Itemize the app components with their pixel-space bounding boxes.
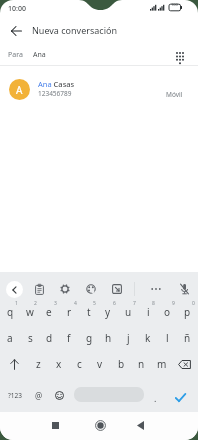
- staticText: w: [26, 305, 34, 319]
- staticText: s: [28, 331, 33, 345]
- staticText: j: [127, 331, 130, 345]
- button[interactable]: [51, 387, 67, 403]
- button[interactable]: i: [118, 302, 178, 322]
- staticText: g: [86, 331, 93, 345]
- button[interactable]: @: [9, 385, 69, 405]
- staticText: 0: [192, 300, 195, 307]
- staticText: 10:00: [8, 4, 26, 14]
- staticText: c: [77, 357, 82, 371]
- staticText: h: [105, 331, 112, 345]
- staticText: f: [67, 331, 71, 345]
- staticText: 123456789: [38, 89, 72, 98]
- button[interactable]: p: [157, 302, 198, 322]
- button[interactable]: [176, 281, 192, 297]
- staticText: .: [154, 392, 157, 404]
- staticText: Móvil: [166, 90, 183, 99]
- staticText: @: [35, 390, 43, 401]
- staticText: Nueva conversación: [32, 24, 117, 36]
- button[interactable]: u: [98, 302, 158, 322]
- staticText: i: [147, 305, 150, 319]
- button[interactable]: e: [19, 302, 79, 322]
- staticText: A: [16, 83, 23, 97]
- staticText: 6: [113, 300, 116, 307]
- button[interactable]: z: [8, 354, 68, 374]
- button[interactable]: b: [91, 354, 151, 374]
- button[interactable]: [5, 355, 23, 373]
- button[interactable]: l: [137, 328, 197, 348]
- button[interactable]: A: [0, 68, 198, 109]
- staticText: u: [125, 305, 132, 319]
- staticText: ?123: [8, 391, 22, 400]
- button[interactable]: x: [29, 354, 89, 374]
- button[interactable]: q: [0, 302, 40, 322]
- staticText: 3: [54, 300, 57, 307]
- staticText: q: [7, 305, 14, 319]
- staticText: p: [184, 305, 191, 319]
- button[interactable]: [170, 48, 190, 68]
- button[interactable]: [57, 281, 73, 297]
- button[interactable]: [45, 415, 65, 435]
- staticText: 2: [34, 300, 37, 307]
- staticText: k: [145, 331, 151, 345]
- staticText: o: [164, 305, 171, 319]
- staticText: d: [46, 331, 53, 345]
- staticText: l: [166, 331, 169, 345]
- staticText: r: [67, 305, 72, 319]
- button[interactable]: ñ: [157, 328, 198, 348]
- button[interactable]: o: [137, 302, 197, 322]
- staticText: 100: [171, 2, 178, 7]
- staticText: Ana: [33, 50, 46, 60]
- button[interactable]: [130, 415, 150, 435]
- staticText: v: [97, 357, 103, 371]
- button[interactable]: g: [59, 328, 119, 348]
- staticText: z: [36, 357, 41, 371]
- staticText: y: [105, 305, 111, 319]
- staticText: 7: [133, 300, 136, 307]
- staticText: t: [87, 305, 91, 319]
- button[interactable]: v: [70, 354, 130, 374]
- button[interactable]: [90, 415, 110, 435]
- button[interactable]: h: [78, 328, 138, 348]
- staticText: e: [46, 305, 52, 319]
- staticText: Para: [8, 50, 23, 60]
- button[interactable]: t: [59, 302, 119, 322]
- staticText: x: [56, 357, 62, 371]
- button[interactable]: [148, 281, 164, 297]
- staticText: b: [118, 357, 125, 371]
- button[interactable]: .: [125, 388, 185, 408]
- staticText: m: [157, 357, 167, 371]
- button[interactable]: n: [111, 354, 171, 374]
- staticText: 1: [15, 300, 18, 307]
- staticText: ñ: [184, 331, 191, 345]
- button[interactable]: [6, 21, 26, 41]
- button[interactable]: y: [78, 302, 138, 322]
- button[interactable]: k: [118, 328, 178, 348]
- button[interactable]: m: [132, 354, 192, 374]
- button[interactable]: [171, 388, 190, 407]
- staticText: a: [7, 331, 13, 345]
- button[interactable]: ?123: [0, 385, 45, 405]
- staticText: 8: [152, 300, 155, 307]
- button[interactable]: [31, 281, 47, 297]
- button[interactable]: [83, 281, 99, 297]
- button[interactable]: s: [0, 328, 60, 348]
- button[interactable]: a: [0, 328, 40, 348]
- button[interactable]: [109, 281, 125, 297]
- staticText: Ana Casas: [38, 79, 75, 89]
- staticText: 9: [172, 300, 175, 307]
- button[interactable]: [175, 355, 193, 373]
- button[interactable]: [6, 281, 23, 298]
- button[interactable]: [74, 387, 144, 402]
- button[interactable]: r: [39, 302, 99, 322]
- button[interactable]: j: [98, 328, 158, 348]
- button[interactable]: f: [39, 328, 99, 348]
- staticText: n: [138, 357, 145, 371]
- button[interactable]: c: [49, 354, 109, 374]
- staticText: 4: [74, 300, 77, 307]
- button[interactable]: w: [0, 302, 60, 322]
- staticText: 5: [93, 300, 96, 307]
- button[interactable]: d: [19, 328, 79, 348]
